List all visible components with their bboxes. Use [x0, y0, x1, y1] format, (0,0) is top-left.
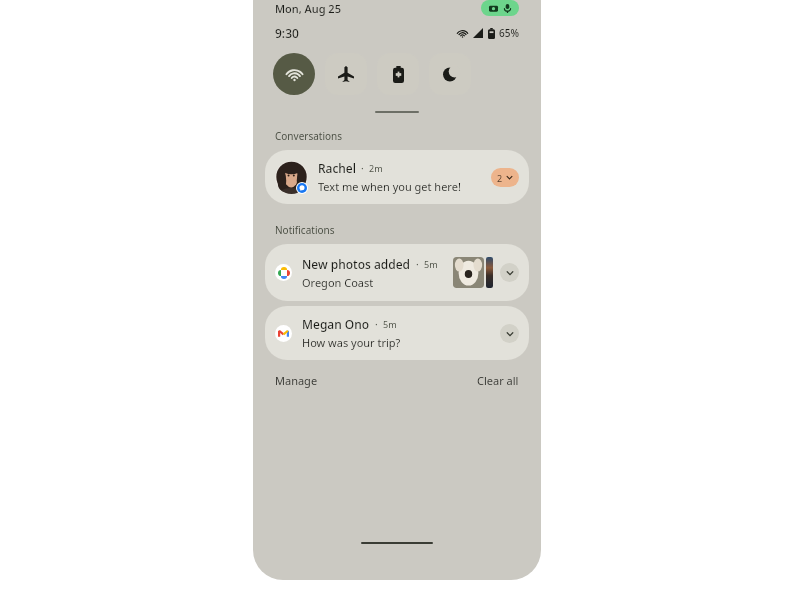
staticText: 2m [369, 162, 383, 174]
staticText: Clear all [477, 373, 519, 388]
staticText: · [375, 317, 378, 331]
button[interactable]: Expand notification [500, 263, 519, 282]
staticText: How was your trip? [302, 335, 401, 350]
button[interactable]: Clear all [477, 373, 519, 388]
staticText: · [361, 161, 364, 175]
button[interactable]: New photos added [265, 244, 529, 301]
button[interactable]: Manage [275, 373, 318, 388]
staticText: 5m [383, 318, 397, 330]
staticText: 9:30 [275, 25, 299, 41]
button[interactable]: Expand, 2 messages [491, 168, 519, 187]
button[interactable]: Internet [273, 53, 315, 95]
button[interactable]: Airplane mode [325, 53, 367, 95]
button[interactable]: Battery saver [377, 53, 419, 95]
button[interactable]: Camera and microphone in use [481, 0, 519, 16]
staticText: 65% [499, 26, 519, 40]
staticText: 5m [424, 258, 438, 270]
staticText: Oregon Coast [302, 275, 374, 290]
staticText: Text me when you get here! [318, 179, 461, 194]
button[interactable]: Expand notification [500, 324, 519, 343]
staticText: Manage [275, 373, 318, 388]
staticText: · [416, 257, 419, 271]
staticText: Notifications [275, 223, 335, 237]
staticText: Mon, Aug 25 [275, 1, 341, 16]
button[interactable] [375, 111, 419, 113]
staticText: New photos added [302, 256, 411, 272]
staticText: Megan Ono [302, 316, 370, 332]
staticText: Conversations [275, 129, 343, 143]
staticText: 2 [497, 172, 503, 184]
button[interactable]: Megan Ono [265, 306, 529, 360]
button[interactable]: Do not disturb [429, 53, 471, 95]
button[interactable]: Rachel [265, 150, 529, 204]
staticText: Rachel [318, 160, 356, 176]
